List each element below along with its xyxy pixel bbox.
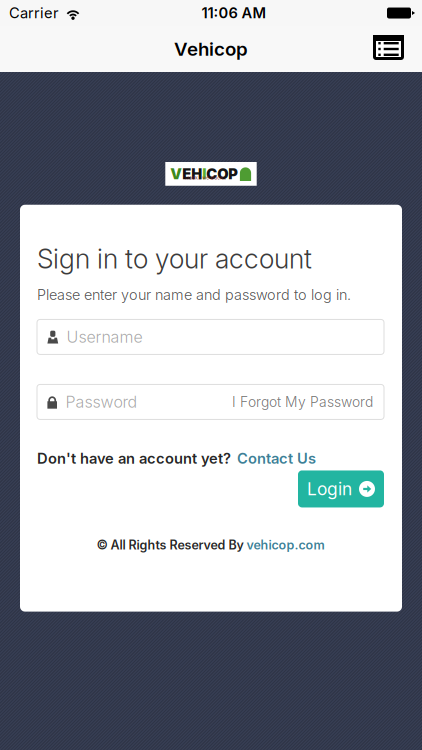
staticText: Carrier [9, 4, 59, 22]
staticText: V [170, 165, 182, 183]
button[interactable]: I Forgot My Password [232, 393, 373, 410]
staticText: I Forgot My Password [232, 393, 373, 410]
button[interactable]: vehicop.com [246, 537, 324, 553]
staticText: Contact Us [237, 449, 316, 467]
staticText: Don't have an account yet? [37, 449, 231, 467]
staticText: COP [206, 165, 238, 183]
staticText: Username [66, 327, 142, 347]
button[interactable]: Contact Us [237, 449, 316, 467]
staticText: Track... we touch... [184, 175, 226, 181]
staticText: Please enter your name and password to l… [37, 286, 351, 303]
staticText: I [202, 165, 206, 183]
staticText: 11:06 AM [201, 4, 266, 22]
staticText: Sign in to your account [37, 243, 312, 275]
button[interactable]: Menu [364, 26, 416, 72]
staticText: Vehicop [174, 38, 248, 60]
staticText: EH [182, 165, 202, 183]
staticText: Login [307, 478, 352, 499]
staticText: © All Rights Reserved By [96, 537, 246, 553]
staticText: vehicop.com [246, 537, 324, 553]
staticText: Password [65, 392, 137, 412]
button[interactable]: Login [298, 470, 384, 507]
